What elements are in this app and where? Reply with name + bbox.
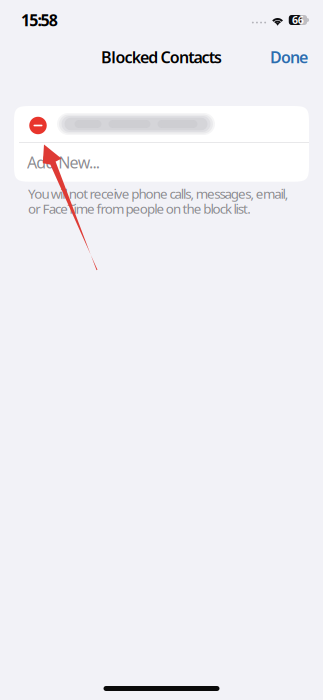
button[interactable]: Add New... bbox=[14, 143, 309, 182]
staticText: 15:58 bbox=[21, 9, 58, 31]
staticText: Add New... bbox=[27, 152, 100, 173]
staticText: You will not receive phone calls, messag… bbox=[28, 185, 289, 202]
staticText: or FaceTime from people on the block lis… bbox=[28, 200, 251, 217]
button[interactable]: Remove blocked contact bbox=[25, 107, 51, 140]
staticText: Done bbox=[270, 46, 308, 68]
button[interactable]: Done bbox=[262, 39, 316, 75]
staticText: 66 bbox=[292, 13, 304, 27]
staticText: Blocked Contacts bbox=[101, 46, 222, 68]
